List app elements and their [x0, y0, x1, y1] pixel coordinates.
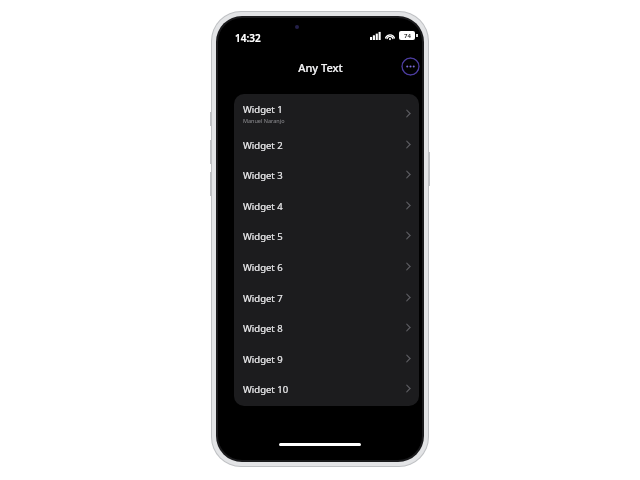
staticText: Widget 1 [243, 103, 283, 116]
button[interactable]: Widget 10 [234, 373, 419, 404]
staticText: Widget 5 [243, 230, 283, 243]
button[interactable]: Widget 3 [234, 159, 419, 190]
staticText: Widget 6 [243, 261, 283, 274]
button[interactable]: Widget 8 [234, 312, 419, 343]
staticText: Manuel Naranjo [243, 117, 285, 124]
button[interactable]: Widget 2 [234, 129, 419, 160]
button[interactable]: Widget 5 [234, 220, 419, 251]
button[interactable]: More options [401, 57, 420, 76]
staticText: Any Text [298, 60, 343, 75]
staticText: Widget 8 [243, 322, 283, 335]
staticText: Widget 3 [243, 169, 283, 182]
button[interactable]: Widget 7 [234, 282, 419, 313]
staticText: Widget 7 [243, 292, 283, 305]
button[interactable]: Widget 1 [234, 98, 419, 129]
staticText: Widget 10 [243, 383, 289, 396]
staticText: 14:32 [235, 31, 261, 45]
button[interactable]: Widget 9 [234, 343, 419, 374]
button[interactable]: Widget 4 [234, 190, 419, 221]
staticText: Widget 2 [243, 139, 283, 152]
staticText: Widget 9 [243, 353, 283, 366]
staticText: Widget 4 [243, 200, 283, 213]
staticText: 74 [404, 32, 411, 40]
button[interactable]: Widget 6 [234, 251, 419, 282]
